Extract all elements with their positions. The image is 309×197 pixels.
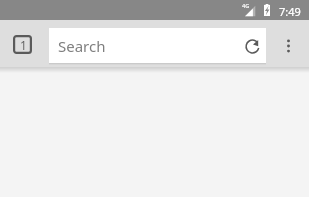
staticText: 4G [242,2,250,10]
staticText: 1 [20,37,27,53]
button[interactable]: Reload [238,32,266,60]
button[interactable]: Tabs [6,30,38,59]
button[interactable]: More options [274,31,303,60]
staticText: 7:49 [279,4,301,19]
button[interactable]: Search [49,28,266,63]
staticText: Search [58,36,106,56]
